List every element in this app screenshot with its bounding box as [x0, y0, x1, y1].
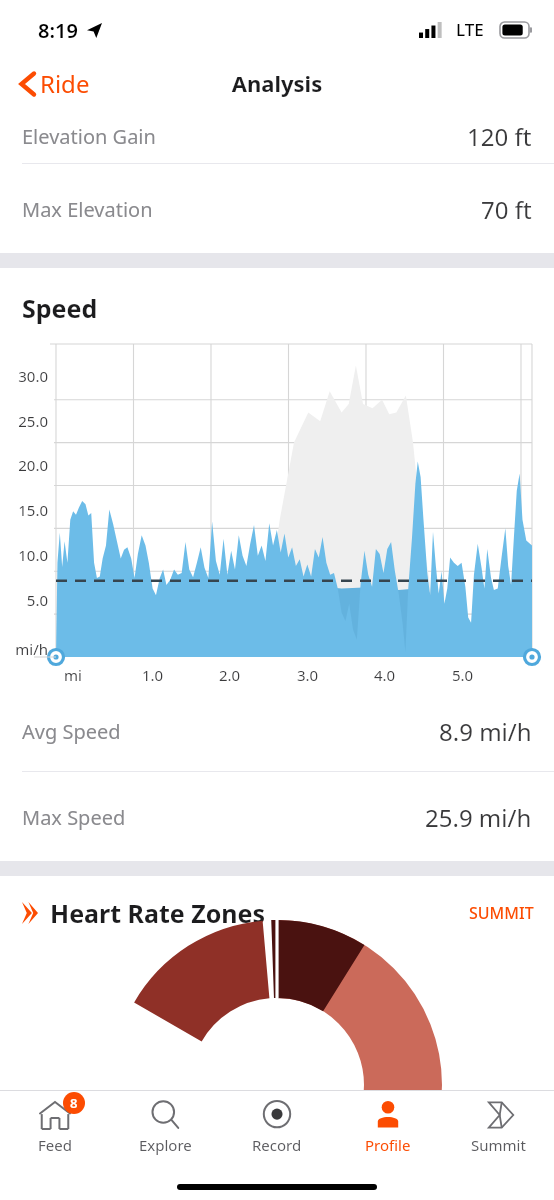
staticText: 120 ft — [467, 120, 532, 153]
button[interactable]: Explore — [110, 1090, 221, 1168]
staticText: 4.0 — [374, 665, 396, 685]
staticText: 25.9 mi/h — [425, 801, 532, 834]
staticText: 10.0 — [0, 545, 48, 565]
staticText: mi/h — [0, 639, 48, 659]
staticText: Feed — [38, 1135, 72, 1155]
staticText: Max Elevation — [22, 196, 153, 223]
staticText: 5.0 — [452, 665, 474, 685]
button[interactable]: Record — [221, 1090, 332, 1168]
staticText: Speed — [22, 291, 98, 325]
staticText: Profile — [365, 1135, 411, 1155]
staticText: Max Speed — [22, 804, 126, 831]
button[interactable]: SUMMIT — [469, 902, 554, 924]
staticText: Ride — [40, 67, 90, 100]
staticText: mi — [64, 665, 82, 685]
staticText: 1.0 — [142, 665, 164, 685]
staticText: 15.0 — [0, 500, 48, 520]
staticText: 30.0 — [0, 366, 48, 386]
button[interactable]: 8 — [0, 1090, 110, 1168]
staticText: 2.0 — [219, 665, 241, 685]
staticText: 8 — [70, 1094, 78, 1112]
staticText: LTE — [456, 18, 484, 41]
staticText: SUMMIT — [469, 902, 534, 924]
staticText: 25.0 — [0, 411, 48, 431]
staticText: Analysis — [0, 68, 554, 98]
button[interactable]: Ride — [16, 63, 94, 104]
staticText: 8:19 — [38, 17, 78, 44]
staticText: Elevation Gain — [22, 123, 156, 150]
staticText: Summit — [471, 1135, 526, 1155]
staticText: Record — [252, 1135, 302, 1155]
staticText: 8.9 mi/h — [439, 715, 532, 748]
staticText: 5.0 — [0, 590, 48, 610]
button[interactable]: Profile — [332, 1090, 443, 1168]
staticText: 20.0 — [0, 455, 48, 475]
staticText: Explore — [139, 1135, 192, 1155]
staticText: Heart Rate Zones — [50, 896, 266, 930]
staticText: 70 ft — [481, 193, 532, 226]
button[interactable]: Summit — [443, 1090, 554, 1168]
staticText: Avg Speed — [22, 718, 121, 745]
staticText: 3.0 — [297, 665, 319, 685]
